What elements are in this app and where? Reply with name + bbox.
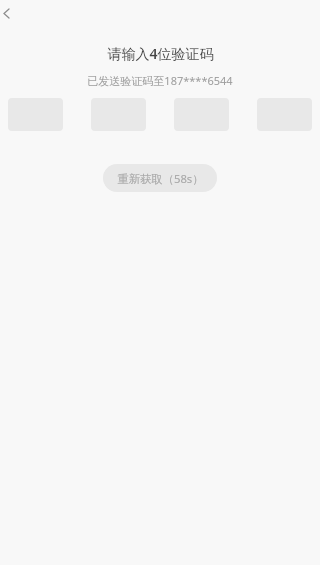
staticText: 请输入4位验证码	[107, 44, 214, 63]
staticText: 已发送验证码至187****6544	[87, 73, 233, 88]
button[interactable]: Back	[0, 1, 18, 25]
staticText: 重新获取（58s）	[117, 171, 204, 186]
button[interactable]: 重新获取（58s）	[103, 164, 217, 192]
